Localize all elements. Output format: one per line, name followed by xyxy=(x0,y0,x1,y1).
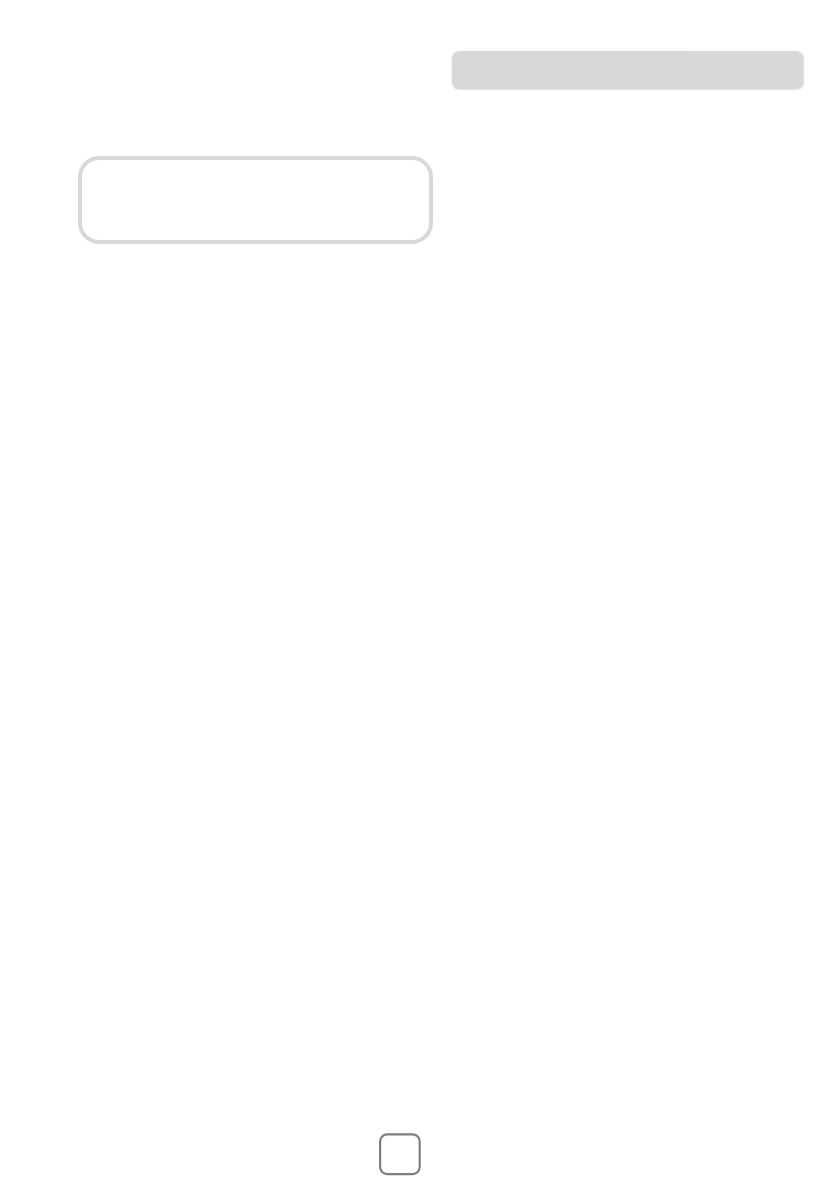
button[interactable]: Outlined container xyxy=(78,156,433,244)
button[interactable]: Checkbox xyxy=(379,1133,421,1176)
